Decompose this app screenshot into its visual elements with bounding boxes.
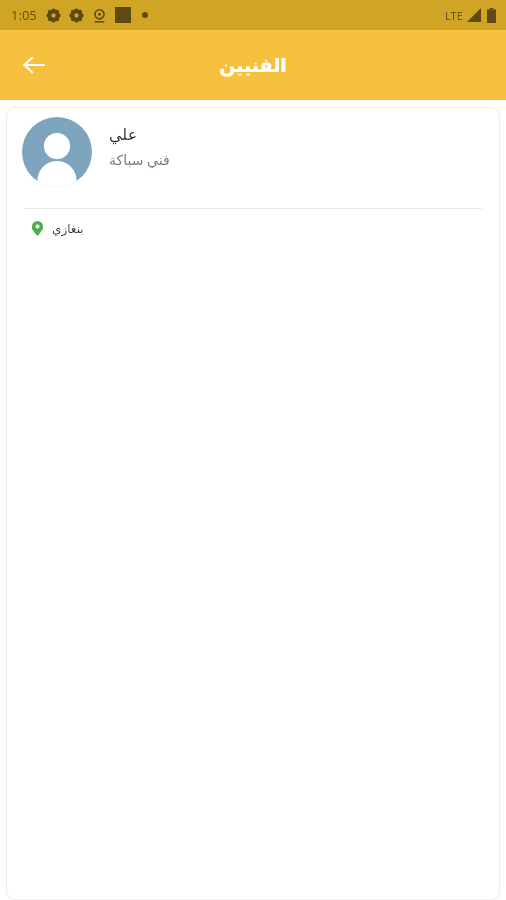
staticText: فني سباكة [109,150,170,169]
staticText: 1:05 [11,6,37,24]
button[interactable]: Back [10,41,58,89]
button[interactable]: علي [6,107,500,900]
staticText: علي [109,125,138,144]
staticText: بنغازي [52,222,84,236]
staticText: LTE [445,8,463,23]
staticText: الفنيين [219,54,287,76]
